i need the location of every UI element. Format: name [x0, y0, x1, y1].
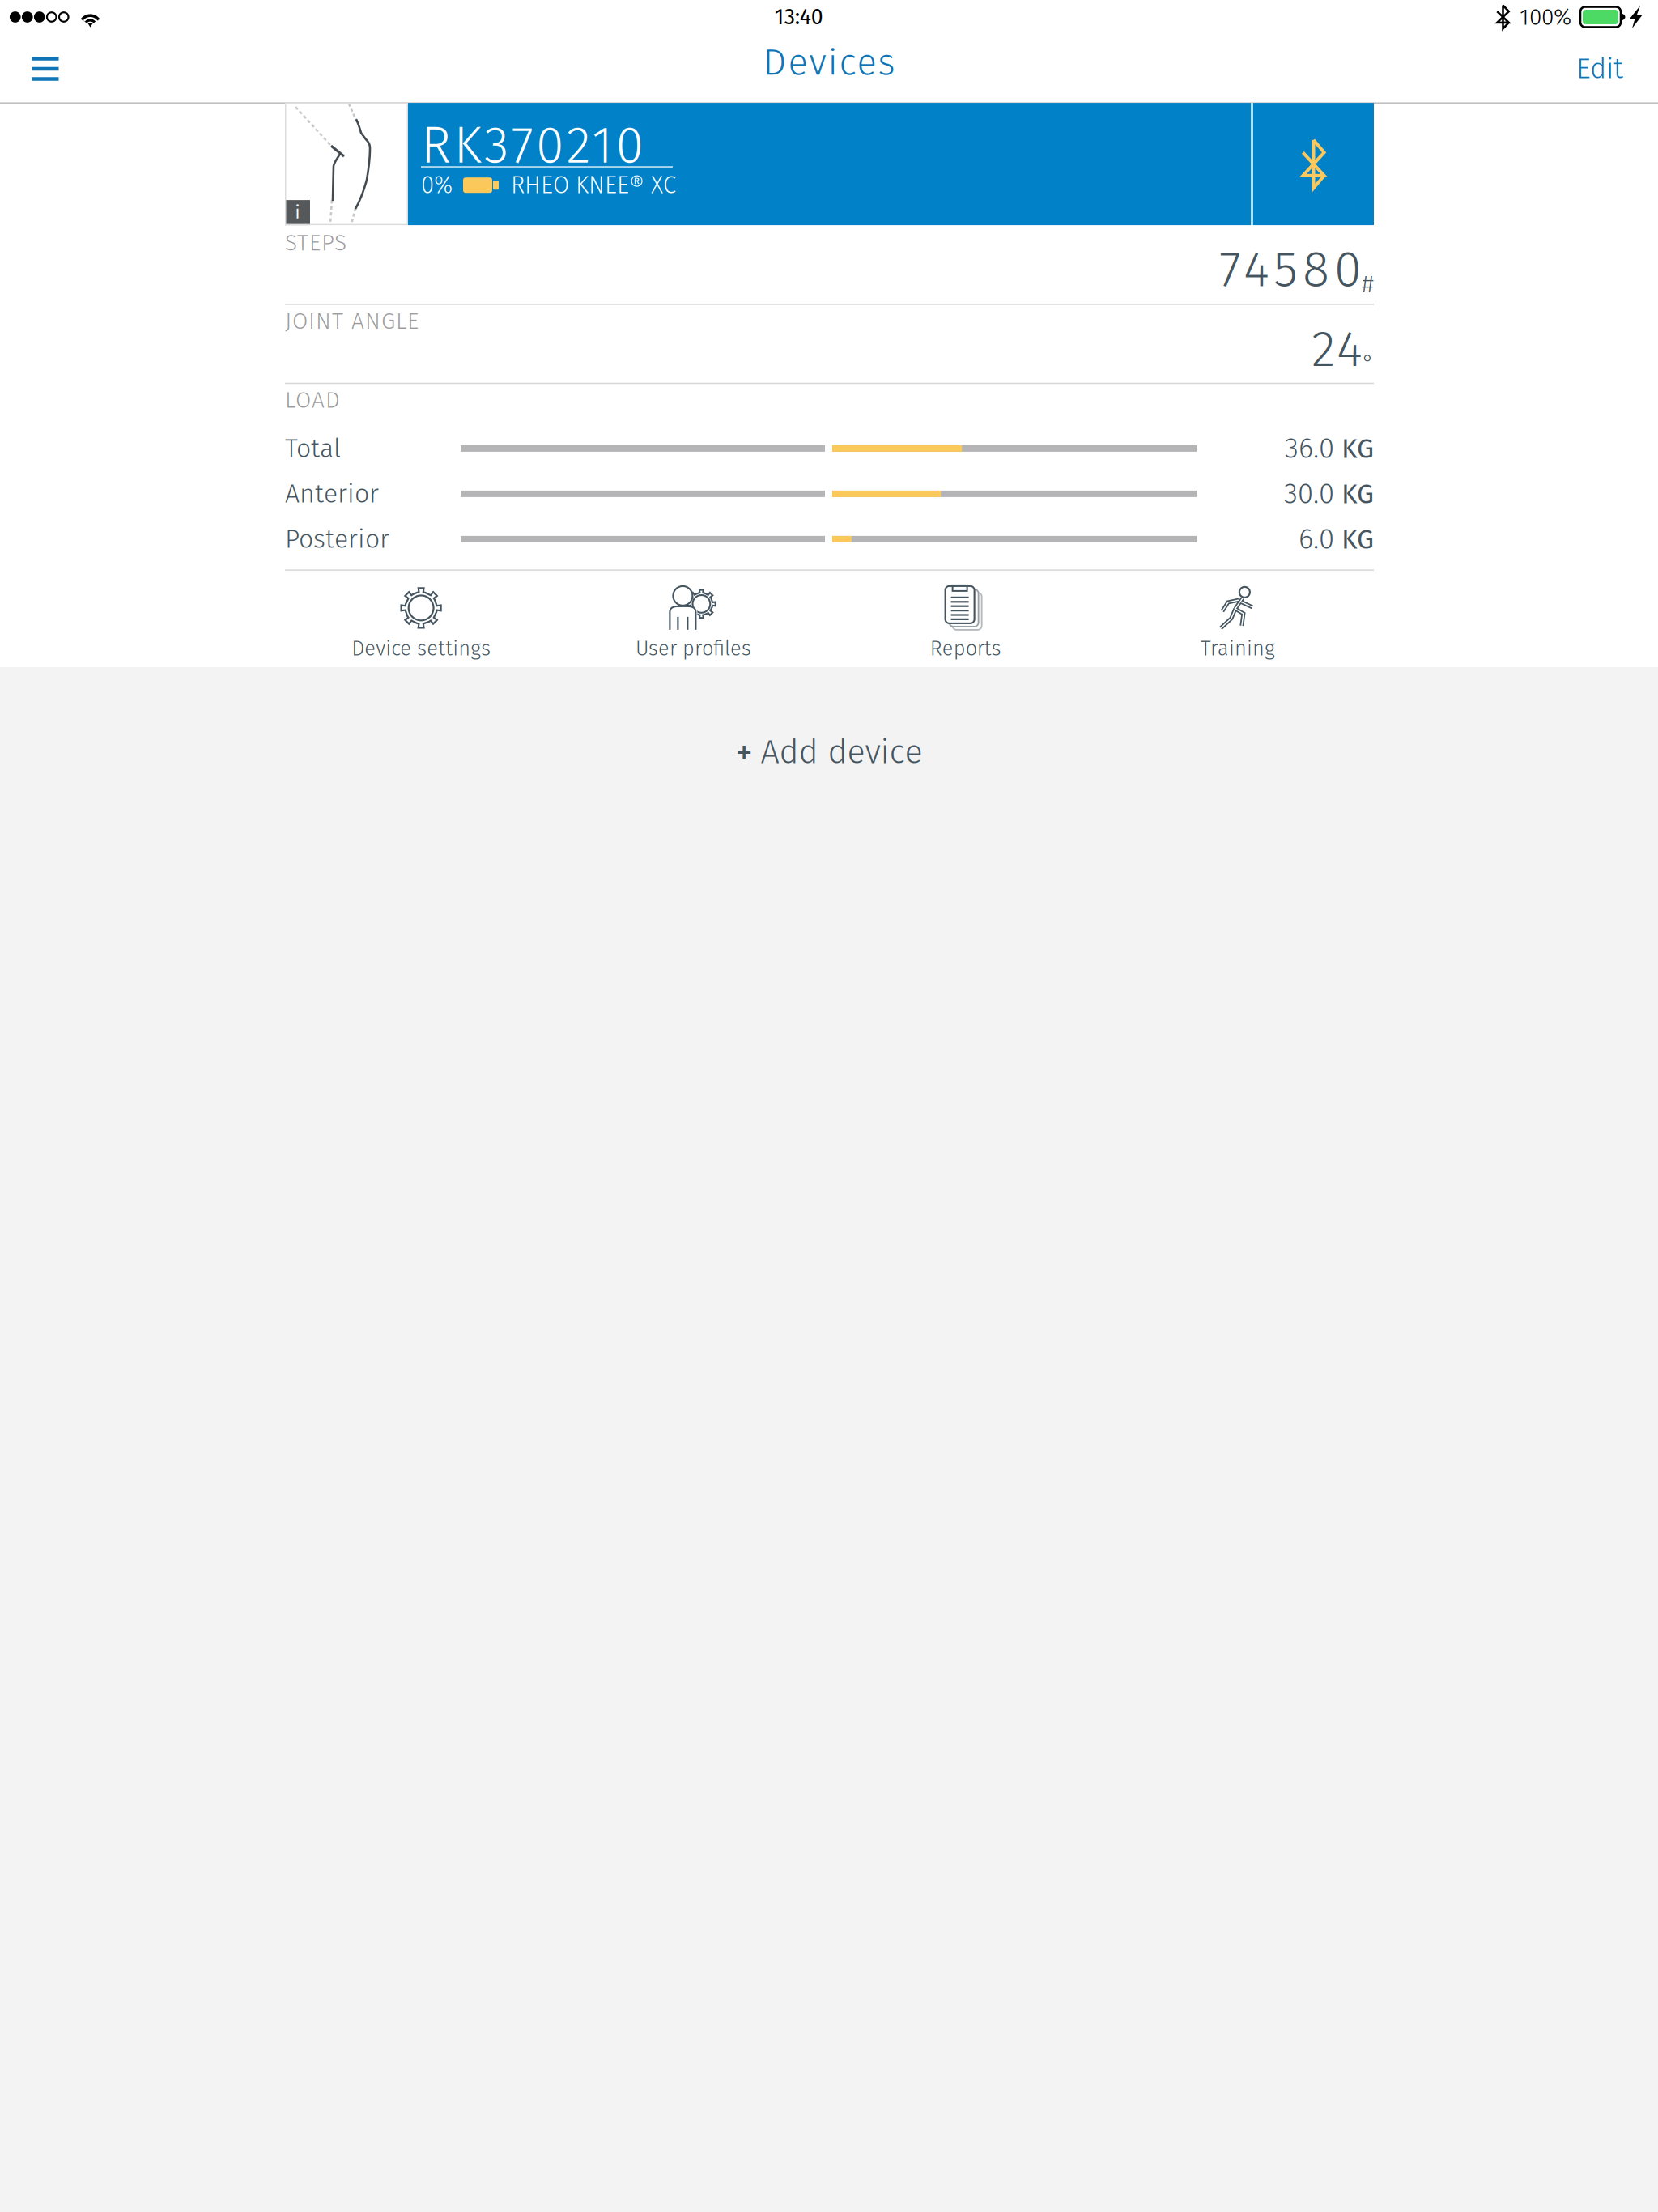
staticText: Devices: [763, 40, 895, 84]
staticText: 36.0: [1285, 432, 1334, 465]
staticText: Training: [1201, 636, 1275, 661]
button[interactable]: Menu: [0, 34, 91, 104]
staticText: Add device: [761, 732, 923, 772]
staticText: 100%: [1520, 3, 1571, 31]
staticText: User profiles: [635, 636, 751, 661]
staticText: KG: [1334, 478, 1374, 510]
button[interactable]: Training: [1102, 571, 1374, 668]
staticText: LOAD: [285, 386, 340, 414]
staticText: KG: [1334, 433, 1374, 465]
staticText: i: [295, 202, 300, 223]
staticText: 13:40: [775, 4, 823, 30]
button[interactable]: Bluetooth: [1253, 103, 1374, 225]
staticText: RK370210: [421, 115, 643, 176]
staticText: 0%: [421, 171, 453, 199]
staticText: #: [1362, 270, 1374, 299]
staticText: KG: [1334, 523, 1374, 556]
button[interactable]: Device settings: [285, 571, 557, 668]
staticText: Posterior: [285, 524, 389, 555]
staticText: 24: [1312, 320, 1363, 379]
staticText: 30.0: [1284, 477, 1334, 511]
staticText: °: [1363, 350, 1374, 376]
button[interactable]: User profiles: [557, 571, 829, 668]
staticText: JOINT ANGLE: [285, 307, 419, 335]
staticText: Total: [285, 433, 341, 464]
staticText: 6.0: [1299, 522, 1334, 556]
button[interactable]: Reports: [829, 571, 1102, 668]
staticText: STEPS: [285, 229, 346, 256]
staticText: Anterior: [285, 478, 379, 509]
staticText: RHEO KNEE® XC: [511, 171, 676, 199]
staticText: +: [735, 731, 752, 773]
staticText: Reports: [930, 636, 1001, 661]
staticText: 74580: [1219, 240, 1362, 299]
button[interactable]: Edit: [1558, 34, 1641, 104]
staticText: Device settings: [351, 636, 491, 661]
button[interactable]: RK370210: [408, 103, 1251, 225]
staticText: Edit: [1576, 52, 1623, 86]
button[interactable]: +: [711, 718, 947, 786]
